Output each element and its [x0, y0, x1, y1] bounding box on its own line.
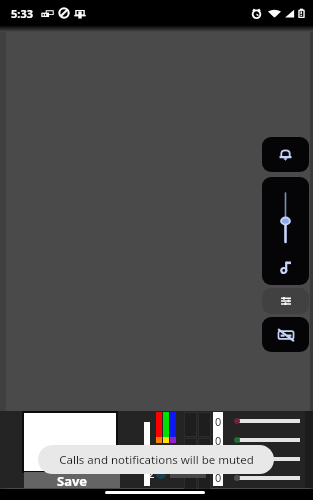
button[interactable]: Captions off	[262, 317, 309, 352]
staticText: Save	[57, 472, 88, 488]
button[interactable]: Save	[24, 472, 120, 488]
staticText: 0	[215, 470, 222, 485]
button[interactable]: Settings	[262, 288, 309, 314]
staticText: 0	[215, 452, 222, 467]
staticText: 2	[148, 466, 155, 481]
staticText: 5:33	[11, 6, 33, 21]
staticText: Calls and notifications will be muted	[59, 452, 254, 468]
staticText: 0	[215, 414, 222, 429]
button[interactable]: Ring	[262, 137, 309, 172]
button[interactable]: Calls and notifications will be muted	[38, 445, 274, 474]
button[interactable]: Media volume	[262, 177, 309, 285]
staticText: 0	[215, 433, 222, 448]
